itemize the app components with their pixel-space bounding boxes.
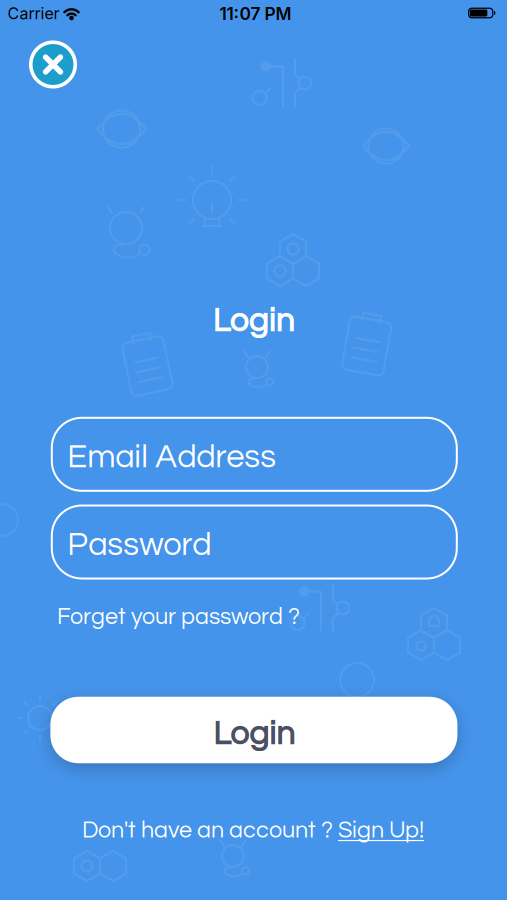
button[interactable]: Login	[50, 697, 457, 763]
staticText: Don't have an account ?	[82, 818, 338, 842]
staticText: Sign Up!	[338, 818, 424, 842]
button[interactable]: Close	[27, 38, 79, 90]
staticText: 11:07 PM	[219, 3, 291, 24]
staticText: Login	[212, 304, 294, 338]
staticText: Email Address	[67, 440, 276, 474]
staticText: Password	[67, 528, 211, 562]
staticText: Login	[213, 717, 295, 751]
button[interactable]: Forget your password ?	[57, 605, 300, 629]
staticText: Carrier	[7, 4, 59, 23]
button[interactable]: Sign Up!	[338, 818, 424, 842]
button[interactable]: Password	[51, 504, 458, 579]
staticText: Forget your password ?	[57, 605, 300, 629]
button[interactable]: Email Address	[51, 417, 458, 492]
